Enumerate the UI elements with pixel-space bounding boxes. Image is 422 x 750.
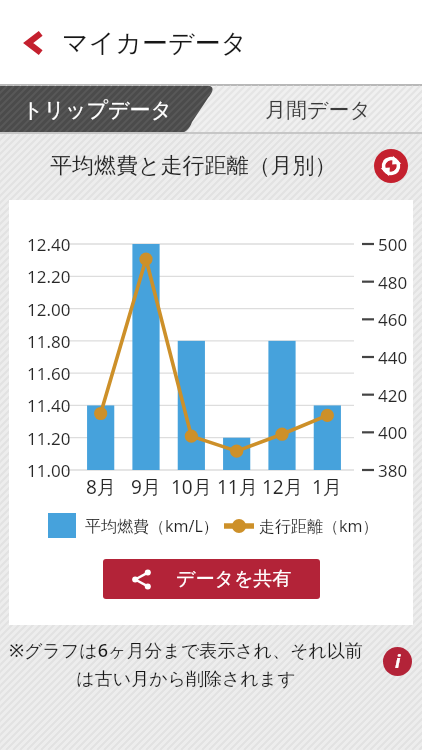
staticText: 460 [378, 308, 408, 331]
staticText: データを共有 [176, 567, 292, 591]
staticText: 500 [378, 233, 408, 256]
staticText: 1月 [312, 474, 342, 500]
staticText: 平均燃費（km/L） [85, 515, 219, 537]
staticText: 380 [378, 459, 408, 482]
staticText: 12.40 [27, 233, 71, 256]
staticText: 10月 [171, 474, 212, 500]
button[interactable]: トリップデータ [0, 86, 214, 134]
staticText: マイカーデータ [62, 27, 248, 60]
button[interactable]: データを共有 [103, 559, 320, 599]
staticText: 480 [378, 271, 408, 294]
staticText: 走行距離（km） [259, 515, 379, 537]
staticText: 440 [378, 346, 408, 369]
staticText: トリップデータ [22, 97, 172, 123]
staticText: 11月 [217, 474, 258, 500]
button[interactable]: Refresh [374, 149, 408, 183]
button[interactable]: 月間データ [214, 86, 422, 134]
staticText: ※グラフは6ヶ月分まで表示され、それ以前 は古い月から削除されます [6, 638, 366, 690]
staticText: 11.40 [27, 394, 71, 417]
staticText: 12.20 [27, 265, 71, 288]
staticText: 月間データ [265, 97, 371, 123]
staticText: 12月 [262, 474, 303, 500]
staticText: 11.80 [27, 330, 71, 353]
staticText: i [395, 649, 401, 674]
staticText: 11.20 [27, 427, 71, 450]
staticText: 11.60 [27, 362, 71, 385]
staticText: 8月 [86, 474, 116, 500]
staticText: 11.00 [27, 459, 71, 482]
staticText: 420 [378, 384, 408, 407]
staticText: 400 [378, 421, 408, 444]
staticText: 12.00 [27, 298, 71, 321]
button[interactable]: Back [10, 20, 56, 66]
staticText: 9月 [131, 474, 161, 500]
button[interactable]: Information [383, 647, 412, 676]
staticText: 平均燃費と走行距離（月別） [50, 152, 337, 180]
